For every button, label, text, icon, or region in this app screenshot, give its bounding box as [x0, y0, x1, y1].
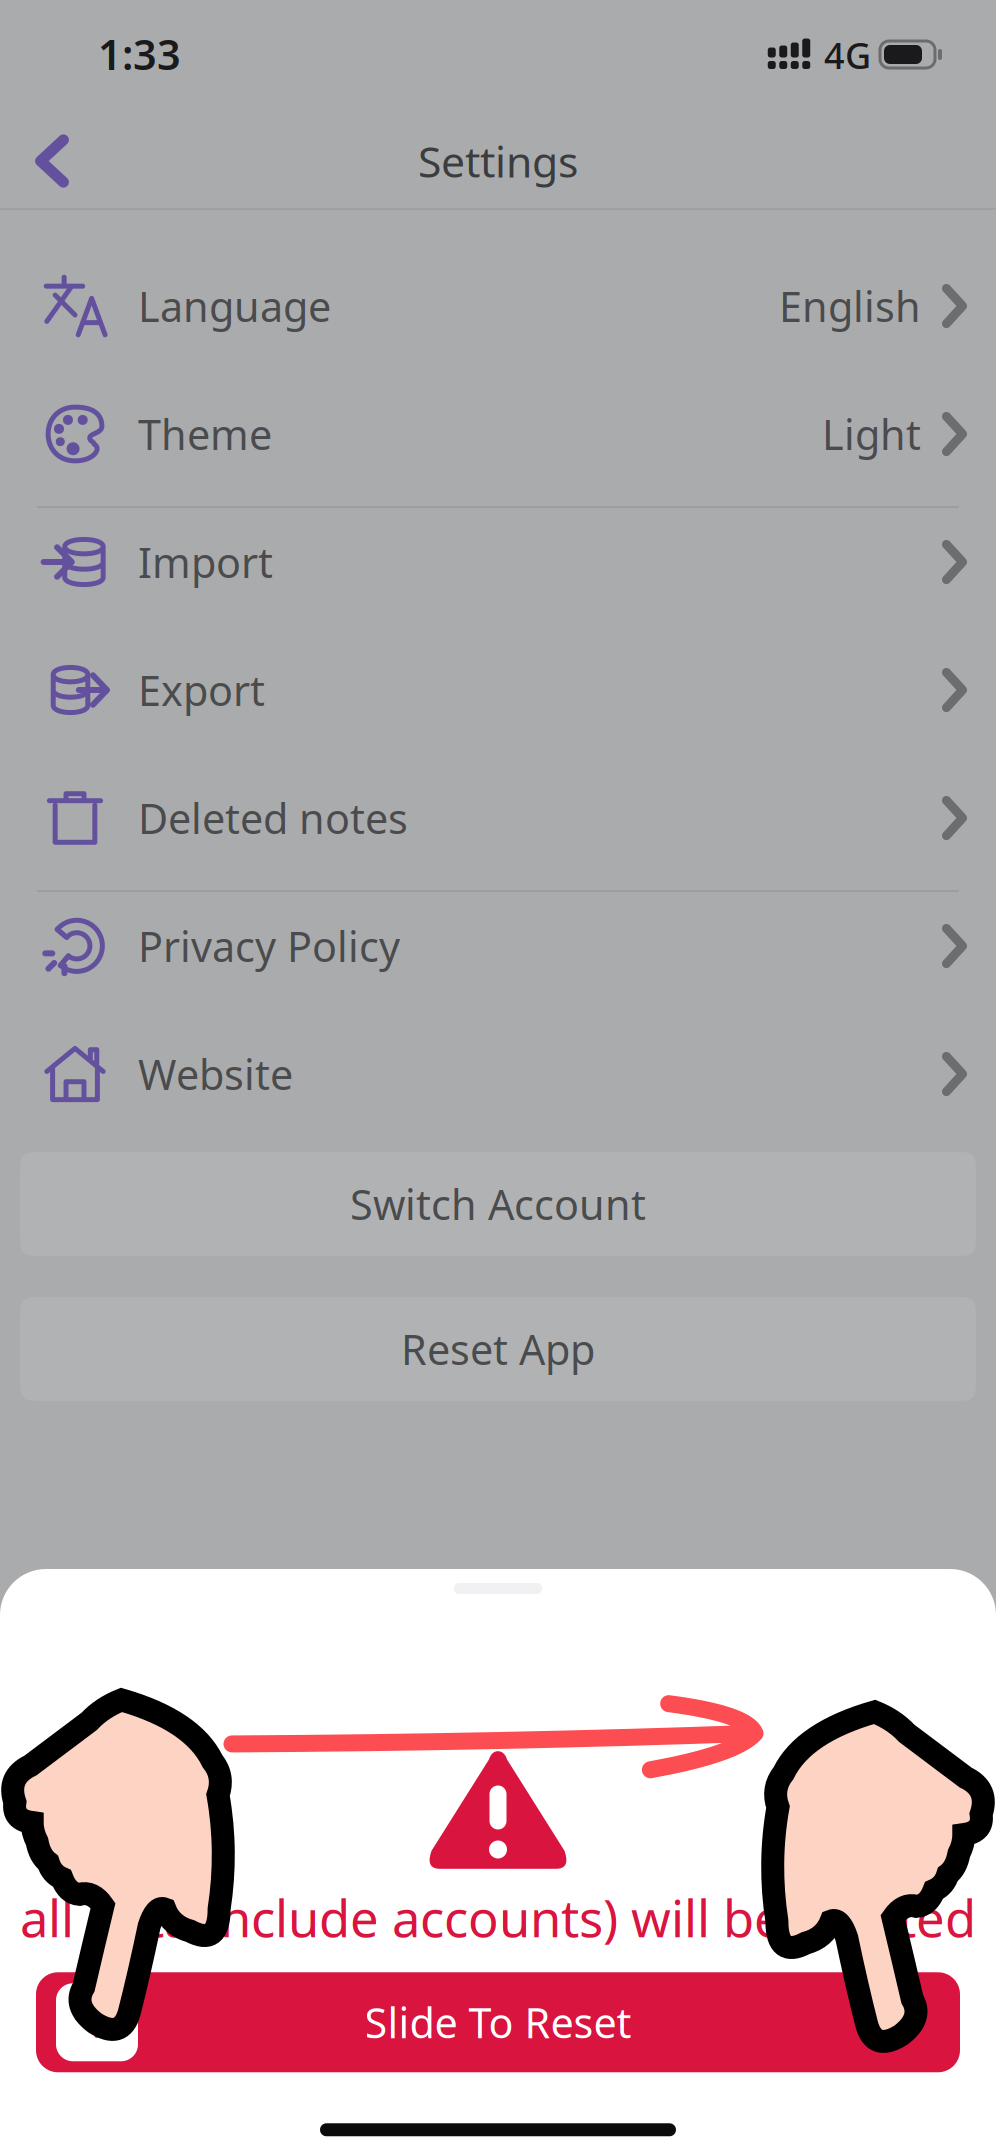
staticText: Deleted notes — [138, 791, 408, 845]
button[interactable]: Import — [0, 498, 996, 626]
staticText: Privacy Policy — [138, 919, 400, 973]
staticText: all data(include accounts) will be delet… — [20, 1884, 976, 1951]
button[interactable]: Website — [0, 1010, 996, 1138]
staticText: Switch Account — [350, 1177, 646, 1231]
staticText: Settings — [418, 133, 578, 189]
staticText: Light — [822, 407, 921, 461]
button[interactable]: Back — [0, 112, 104, 210]
staticText: Slide To Reset — [364, 1995, 631, 2050]
staticText: Language — [138, 279, 331, 333]
button[interactable]: Deleted notes — [0, 754, 996, 882]
staticText: English — [779, 279, 921, 333]
button[interactable]: Switch Account — [20, 1152, 976, 1256]
staticText: Export — [138, 663, 265, 717]
button[interactable]: Privacy Policy — [0, 882, 996, 1010]
button[interactable]: Language — [0, 242, 996, 370]
staticText: Reset App — [401, 1322, 595, 1376]
staticText: Import — [138, 535, 273, 589]
staticText: Website — [138, 1047, 293, 1101]
staticText: 1:33 — [98, 27, 181, 81]
staticText: Theme — [138, 407, 272, 461]
staticText: 4G — [824, 31, 871, 79]
button[interactable]: Export — [0, 626, 996, 754]
button[interactable]: Reset App — [20, 1297, 976, 1401]
button[interactable]: Slide To Reset — [36, 1972, 960, 2072]
button[interactable]: Theme — [0, 370, 996, 498]
